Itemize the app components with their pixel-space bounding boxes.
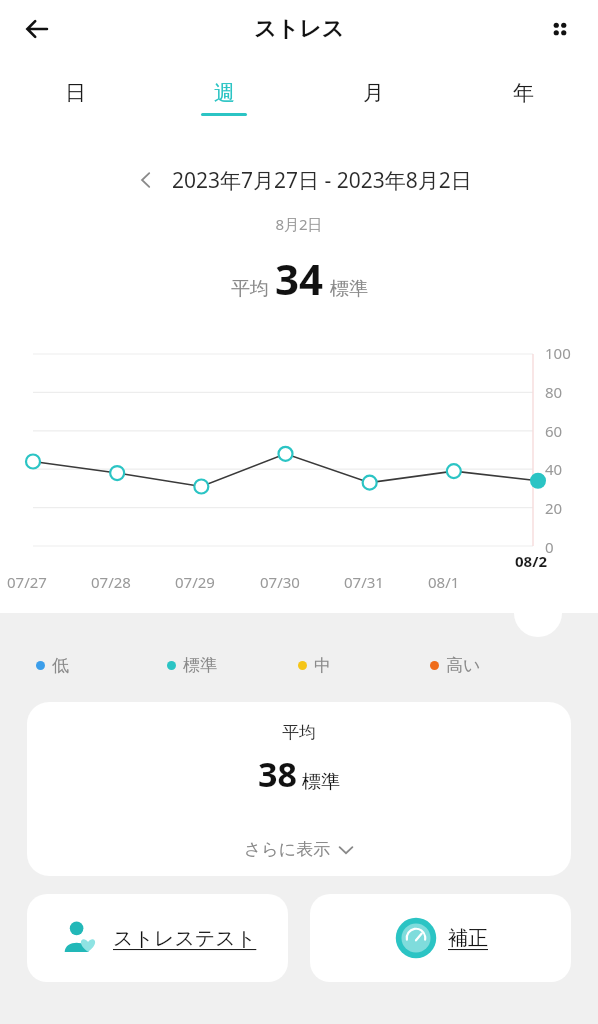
- staticText: 20: [545, 498, 563, 518]
- staticText: 100: [545, 343, 571, 363]
- staticText: 高い: [446, 655, 481, 676]
- button[interactable]: More options: [536, 5, 584, 53]
- staticText: 40: [545, 459, 563, 479]
- button[interactable]: 日: [0, 80, 149, 116]
- staticText: 8月2日: [0, 214, 598, 234]
- staticText: 07/30: [260, 572, 300, 592]
- staticText: 38: [258, 751, 297, 797]
- button[interactable]: Previous week: [126, 160, 166, 200]
- staticText: 中: [314, 655, 331, 676]
- staticText: さらに表示: [244, 839, 331, 860]
- staticText: 日: [65, 80, 86, 106]
- staticText: 標準: [183, 655, 217, 676]
- staticText: ストレス: [254, 15, 345, 43]
- staticText: 平均: [282, 722, 316, 743]
- staticText: 0: [545, 537, 554, 557]
- staticText: 07/29: [175, 572, 215, 592]
- staticText: 標準: [330, 277, 368, 301]
- staticText: 34: [275, 250, 324, 307]
- staticText: 08/2: [515, 551, 547, 571]
- staticText: 07/27: [7, 572, 47, 592]
- staticText: 2023年7月27日 - 2023年8月2日: [172, 166, 472, 195]
- staticText: 月: [363, 80, 384, 106]
- staticText: 80: [545, 382, 563, 402]
- staticText: ストレステスト: [113, 926, 257, 951]
- staticText: 08/1: [428, 572, 460, 592]
- button[interactable]: 補正: [310, 894, 571, 982]
- button[interactable]: 平均: [27, 702, 571, 876]
- staticText: 低: [52, 655, 69, 676]
- staticText: 60: [545, 421, 563, 441]
- staticText: 補正: [448, 926, 488, 951]
- button[interactable]: ストレステスト: [27, 894, 288, 982]
- button[interactable]: Back: [14, 5, 62, 53]
- staticText: 平均: [231, 277, 269, 301]
- staticText: 週: [214, 80, 235, 106]
- staticText: 07/28: [91, 572, 131, 592]
- staticText: 標準: [302, 770, 340, 794]
- button[interactable]: 月: [298, 80, 448, 116]
- button[interactable]: 年: [448, 80, 598, 116]
- staticText: 07/31: [344, 572, 384, 592]
- staticText: 年: [513, 80, 534, 106]
- button[interactable]: 週: [149, 80, 298, 116]
